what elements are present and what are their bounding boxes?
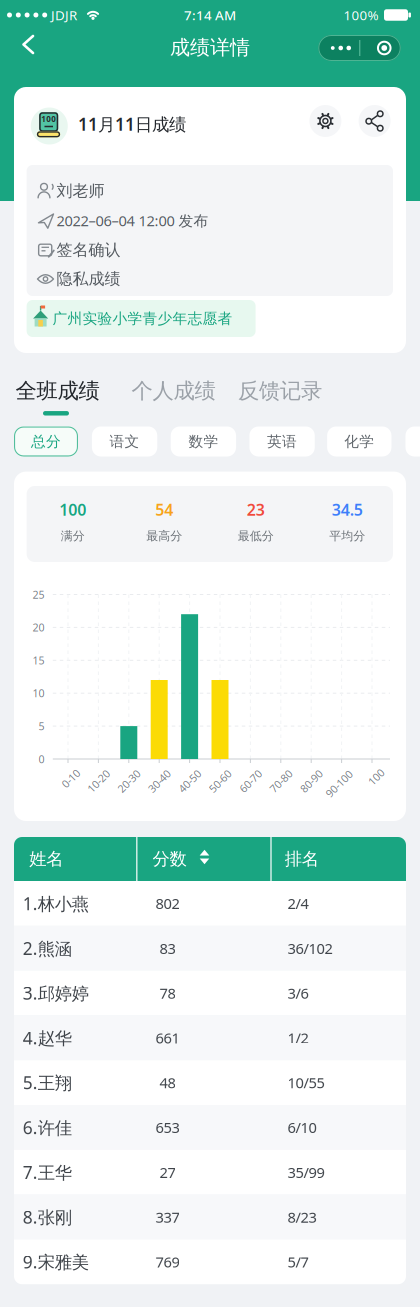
staticText: 化学: [344, 432, 374, 450]
staticText: 6.许佳: [23, 1116, 72, 1139]
staticText: 8.张刚: [23, 1205, 72, 1228]
staticText: 数学: [188, 432, 218, 450]
staticText: 35/99: [288, 1162, 325, 1182]
staticText: 10/55: [288, 1073, 325, 1092]
button[interactable]: [318, 35, 401, 61]
staticText: 姓名: [29, 848, 63, 870]
staticText: 50-60: [207, 774, 234, 788]
staticText: 7:14 AM: [184, 6, 236, 24]
staticText: 分数: [153, 848, 187, 870]
button[interactable]: 数学: [171, 426, 236, 456]
staticText: 8/23: [288, 1207, 317, 1227]
staticText: 1/2: [288, 1028, 309, 1048]
staticText: 10: [32, 686, 44, 700]
button[interactable]: 个人成绩: [118, 374, 228, 408]
staticText: 70-80: [267, 774, 294, 788]
staticText: 80-90: [298, 774, 325, 788]
button[interactable]: 英语: [249, 426, 315, 456]
staticText: 5/7: [288, 1252, 309, 1272]
staticText: 60-70: [237, 774, 264, 788]
staticText: 10-20: [85, 774, 112, 788]
staticText: 满分: [61, 529, 85, 543]
staticText: 769: [155, 1252, 179, 1272]
button[interactable]: 化学: [327, 426, 391, 456]
button[interactable]: 语文: [92, 426, 157, 456]
staticText: 最高分: [146, 529, 182, 543]
button[interactable]: 总分: [14, 426, 78, 456]
staticText: 2022–06–04 12:00 发布: [56, 211, 208, 230]
staticText: 刘老师: [56, 181, 104, 201]
button[interactable]: [359, 105, 391, 137]
staticText: 广州实验小学青少年志愿者: [53, 309, 233, 327]
button[interactable]: [11, 30, 45, 64]
staticText: 总分: [31, 432, 61, 450]
staticText: 36/102: [288, 938, 333, 958]
staticText: 100: [367, 770, 385, 784]
staticText: 个人成绩: [131, 378, 215, 404]
staticText: 平均分: [329, 529, 365, 543]
staticText: 最低分: [238, 529, 274, 543]
staticText: 78: [159, 983, 175, 1003]
staticText: 2.熊涵: [23, 937, 72, 960]
staticText: 23: [247, 499, 265, 520]
staticText: 9.宋雅美: [23, 1250, 89, 1273]
button[interactable]: [309, 105, 341, 137]
staticText: 1.林小燕: [23, 892, 89, 915]
staticText: 15: [32, 653, 44, 667]
staticText: 25: [32, 587, 44, 602]
staticText: 48: [159, 1073, 175, 1092]
staticText: 成绩详情: [170, 35, 250, 60]
staticText: 100: [41, 114, 56, 124]
staticText: 0: [38, 752, 44, 766]
staticText: 11月11日成绩: [78, 112, 186, 135]
staticText: 语文: [110, 432, 140, 450]
staticText: 反馈记录: [238, 378, 322, 404]
staticText: 83: [159, 938, 175, 958]
button[interactable]: 全班成绩: [2, 374, 112, 408]
staticText: JDJR: [51, 6, 77, 24]
staticText: 全班成绩: [15, 378, 99, 404]
staticText: 4.赵华: [23, 1026, 72, 1049]
staticText: 5: [38, 719, 44, 733]
staticText: 337: [155, 1207, 179, 1227]
staticText: 3/6: [288, 983, 309, 1003]
staticText: 5.王翔: [23, 1071, 72, 1094]
staticText: 隐私成绩: [56, 269, 120, 289]
staticText: 英语: [267, 432, 297, 450]
staticText: 签名确认: [56, 240, 120, 260]
button[interactable]: 反馈记录: [225, 374, 335, 408]
staticText: 100: [59, 499, 86, 520]
staticText: 661: [155, 1028, 179, 1048]
staticText: 20: [32, 620, 44, 634]
staticText: 40-50: [176, 774, 203, 788]
staticText: 3.邱婷婷: [23, 981, 89, 1004]
staticText: 20-30: [115, 774, 142, 788]
staticText: 54: [155, 499, 173, 520]
staticText: 0-10: [60, 771, 81, 786]
staticText: 802: [155, 894, 179, 913]
staticText: 100%: [343, 6, 378, 24]
staticText: 27: [159, 1162, 175, 1182]
staticText: 90-100: [323, 777, 356, 791]
staticText: 7.王华: [23, 1161, 72, 1184]
staticText: 30-40: [146, 774, 173, 788]
staticText: 34.5: [332, 499, 363, 520]
staticText: 6/10: [288, 1118, 317, 1137]
staticText: 2/4: [288, 894, 309, 913]
button[interactable]: 广州实验小学青少年志愿者: [27, 300, 256, 337]
staticText: 排名: [285, 848, 319, 870]
staticText: 653: [155, 1118, 179, 1137]
